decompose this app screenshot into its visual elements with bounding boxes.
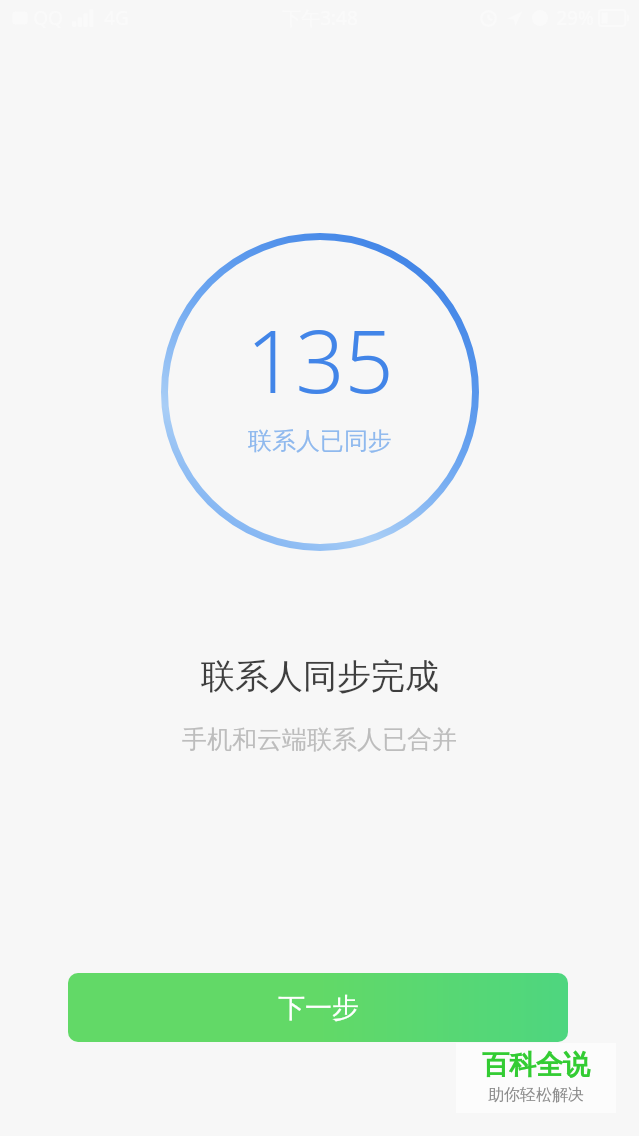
button[interactable]: 下一步	[68, 973, 568, 1042]
staticText: 联系人已同步	[248, 426, 392, 456]
staticText: 百科全说	[482, 1048, 590, 1082]
staticText: 135	[246, 301, 394, 418]
staticText: 联系人同步完成	[201, 655, 439, 698]
staticText: 手机和云端联系人已合并	[182, 724, 457, 755]
staticText: 助你轻松解决	[488, 1085, 584, 1105]
staticText: 下一步	[278, 991, 359, 1025]
